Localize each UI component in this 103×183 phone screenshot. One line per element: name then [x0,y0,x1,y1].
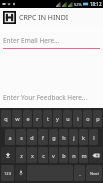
button[interactable]: Enter Your Feedback Here... [3,93,100,102]
button[interactable]: d [27,129,37,145]
staticText: r [36,115,39,122]
button[interactable]: 123 [1,165,14,181]
staticText: c [42,152,45,159]
button[interactable]: Next [86,165,102,181]
button[interactable]: Enter Email Here... [3,36,100,49]
staticText: Enter Email Here... [3,36,60,45]
button[interactable]: Voice input [15,165,26,181]
staticText: u [66,115,70,122]
staticText: e [26,115,30,122]
button[interactable]: n [69,147,78,163]
button[interactable]: g [49,129,58,145]
staticText: z [20,152,23,159]
staticText: i [77,115,79,122]
button[interactable]: App icon [2,10,17,25]
staticText: s [20,134,23,141]
staticText: y [56,115,59,122]
button[interactable]: l [89,129,98,145]
staticText: l [93,134,95,141]
button[interactable]: i [73,110,82,127]
staticText: m [81,152,87,159]
button[interactable]: h [59,129,68,145]
staticText: q [4,115,8,122]
staticText: k [82,134,85,141]
button[interactable]: q [1,110,11,127]
button[interactable]: f [38,129,48,145]
button[interactable]: z [16,147,26,163]
staticText: v [52,152,55,159]
staticText: n [72,152,76,159]
staticText: o [86,115,90,122]
staticText: 18:12 [90,1,102,7]
staticText: g [52,134,56,141]
button[interactable]: v [49,147,58,163]
button[interactable]: u [63,110,72,127]
button[interactable]: x [27,147,37,163]
button[interactable]: o [83,110,92,127]
staticText: t [47,115,49,122]
button[interactable]: a [5,129,15,145]
button[interactable]: Shift [1,147,15,163]
button[interactable]: . [74,165,85,181]
staticText: 123 [4,171,11,176]
staticText: j [73,134,75,141]
button[interactable]: s [16,129,26,145]
button[interactable]: j [69,129,78,145]
staticText: a [8,134,12,141]
button[interactable]: r [33,110,42,127]
staticText: . [79,170,81,177]
staticText: b [62,152,66,159]
staticText: CRPC IN HINDI [19,13,69,23]
staticText: Next [90,171,99,176]
staticText: Enter Your Feedback Here... [3,93,88,102]
button[interactable]: k [79,129,88,145]
button[interactable]: c [38,147,48,163]
staticText: w [15,115,20,122]
button[interactable]: b [59,147,68,163]
button[interactable]: w [12,110,22,127]
staticText: p [96,115,100,122]
staticText: f [42,134,44,141]
button[interactable]: y [53,110,62,127]
button[interactable]: t [43,110,52,127]
button[interactable]: p [93,110,102,127]
staticText: 52% [74,2,82,7]
button[interactable]: m [79,147,88,163]
staticText: d [30,134,34,141]
button[interactable]: Backspace [89,147,102,163]
staticText: x [31,152,34,159]
staticText: h [62,134,66,141]
button[interactable]: e [23,110,32,127]
